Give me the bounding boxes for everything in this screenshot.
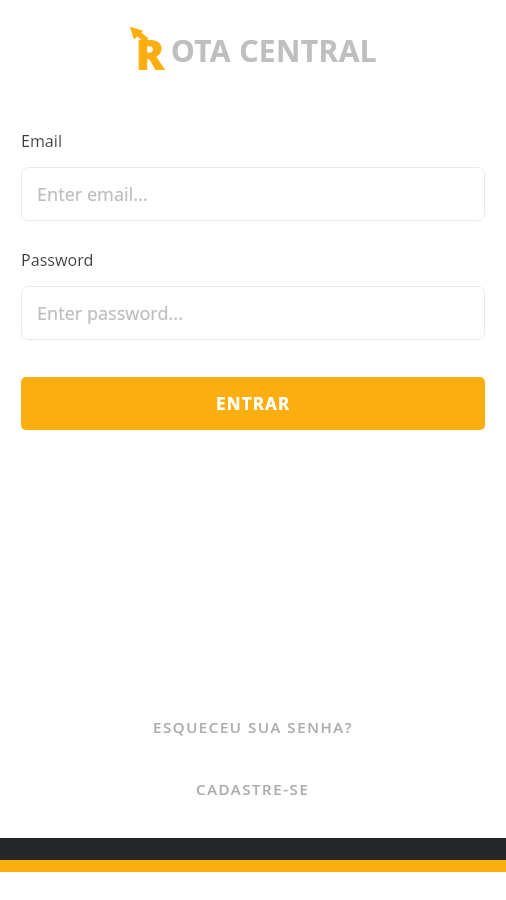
staticText: ENTRAR <box>216 392 291 415</box>
button[interactable]: ESQUECEU SUA SENHA? <box>139 712 367 742</box>
button[interactable]: CADASTRE-SE <box>182 774 324 804</box>
staticText: Enter email... <box>37 182 148 207</box>
staticText: CADASTRE-SE <box>196 779 310 799</box>
button[interactable]: Email input <box>21 167 485 221</box>
staticText: Password <box>21 249 94 271</box>
button[interactable]: Password input <box>21 286 485 340</box>
staticText: Email <box>21 130 63 152</box>
button[interactable]: ENTRAR <box>21 377 485 430</box>
staticText: OTA CENTRAL <box>171 30 377 71</box>
staticText: Enter password... <box>37 301 183 326</box>
staticText: ESQUECEU SUA SENHA? <box>153 717 353 737</box>
staticText: R <box>135 24 165 76</box>
